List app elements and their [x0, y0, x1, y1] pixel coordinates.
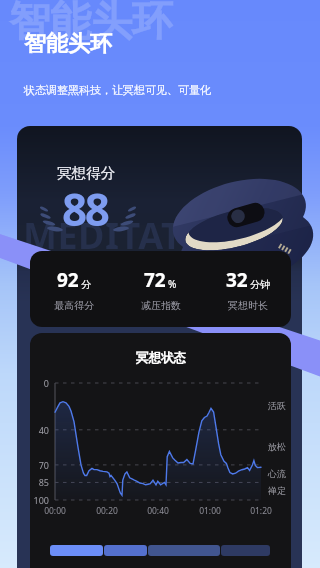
staticText: 32 — [226, 267, 248, 293]
staticText: 分钟 — [250, 278, 270, 291]
staticText: 最高得分 — [54, 299, 94, 312]
staticText: 禅定 — [268, 485, 286, 496]
staticText: 40 — [30, 424, 49, 436]
staticText: 0 — [30, 377, 49, 389]
button[interactable]: page — [104, 545, 147, 556]
staticText: 100 — [30, 494, 49, 506]
staticText: 00:00 — [37, 505, 73, 517]
staticText: 心流 — [268, 468, 286, 479]
staticText: 状态调整黑科技，让冥想可见、可量化 — [24, 83, 211, 97]
staticText: 智能头环 — [9, 0, 173, 48]
staticText: 88 — [62, 179, 108, 239]
staticText: % — [168, 277, 177, 291]
staticText: 智能头环 — [24, 30, 112, 58]
staticText: 冥想得分 — [57, 164, 115, 182]
staticText: 冥想状态 — [136, 350, 186, 366]
staticText: 00:40 — [140, 505, 176, 517]
staticText: 减压指数 — [141, 299, 181, 312]
staticText: 92 — [57, 267, 79, 293]
staticText: 分 — [81, 278, 91, 291]
staticText: 72 — [144, 267, 166, 293]
staticText: 放松 — [268, 441, 286, 452]
button[interactable]: page — [221, 545, 270, 556]
staticText: 冥想时长 — [228, 299, 268, 312]
button[interactable]: page — [50, 545, 103, 556]
staticText: 85 — [30, 476, 49, 488]
staticText: 70 — [30, 459, 49, 471]
button[interactable]: 92 — [30, 251, 291, 327]
staticText: 活跃 — [268, 400, 286, 411]
button[interactable]: page — [148, 545, 220, 556]
staticText: 01:00 — [192, 505, 228, 517]
staticText: 00:20 — [89, 505, 125, 517]
staticText: MEDITATION — [23, 211, 256, 260]
staticText: 01:20 — [243, 505, 279, 517]
